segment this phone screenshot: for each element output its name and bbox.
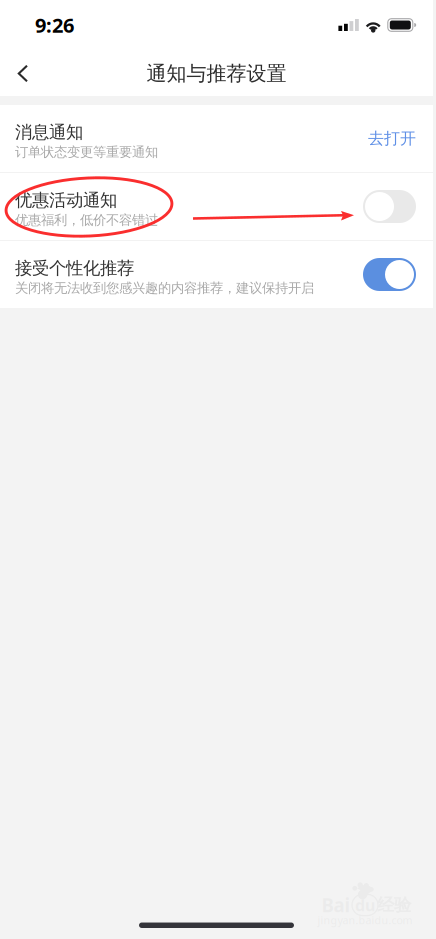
staticText: 通知与推荐设置 <box>146 61 286 86</box>
button[interactable]: 优惠活动通知 <box>363 190 416 223</box>
button[interactable]: 接受个性化推荐 <box>363 258 416 291</box>
staticText: 去打开 <box>368 129 416 148</box>
staticText: 优惠活动通知 <box>15 190 117 211</box>
staticText: 9:26 <box>35 12 74 38</box>
staticText: 经验 <box>377 894 411 916</box>
button[interactable]: Back <box>0 47 46 99</box>
staticText: 关闭将无法收到您感兴趣的内容推荐，建议保持开启 <box>15 280 314 296</box>
staticText: du <box>355 894 375 916</box>
button[interactable]: 消息通知 <box>0 105 433 172</box>
button[interactable]: 优惠活动通知 <box>0 173 433 240</box>
staticText: Bai <box>321 893 350 917</box>
button[interactable]: 接受个性化推荐 <box>0 241 433 308</box>
button[interactable]: 去打开 <box>368 129 416 148</box>
staticText: 消息通知 <box>15 122 83 143</box>
staticText: 订单状态变更等重要通知 <box>15 144 158 160</box>
staticText: 优惠福利，低价不容错过 <box>15 212 158 228</box>
staticText: 接受个性化推荐 <box>15 258 134 279</box>
